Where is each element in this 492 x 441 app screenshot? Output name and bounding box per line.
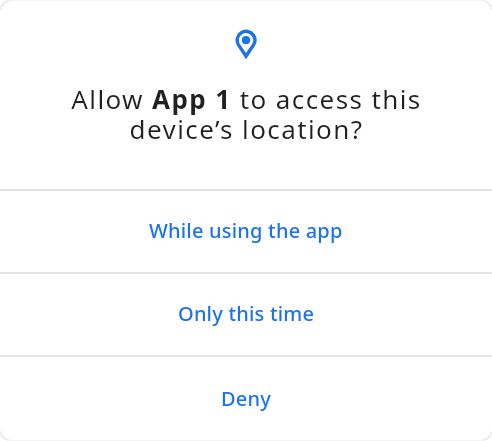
staticText: Only this time [178, 300, 315, 327]
staticText: Deny [221, 385, 271, 412]
button[interactable]: Only this time [0, 274, 492, 355]
staticText: While using the app [149, 217, 343, 244]
button[interactable]: While using the app [0, 191, 492, 272]
button[interactable]: Deny [0, 357, 492, 441]
staticText: Allow App 1 to access this device’s loca… [71, 81, 422, 147]
